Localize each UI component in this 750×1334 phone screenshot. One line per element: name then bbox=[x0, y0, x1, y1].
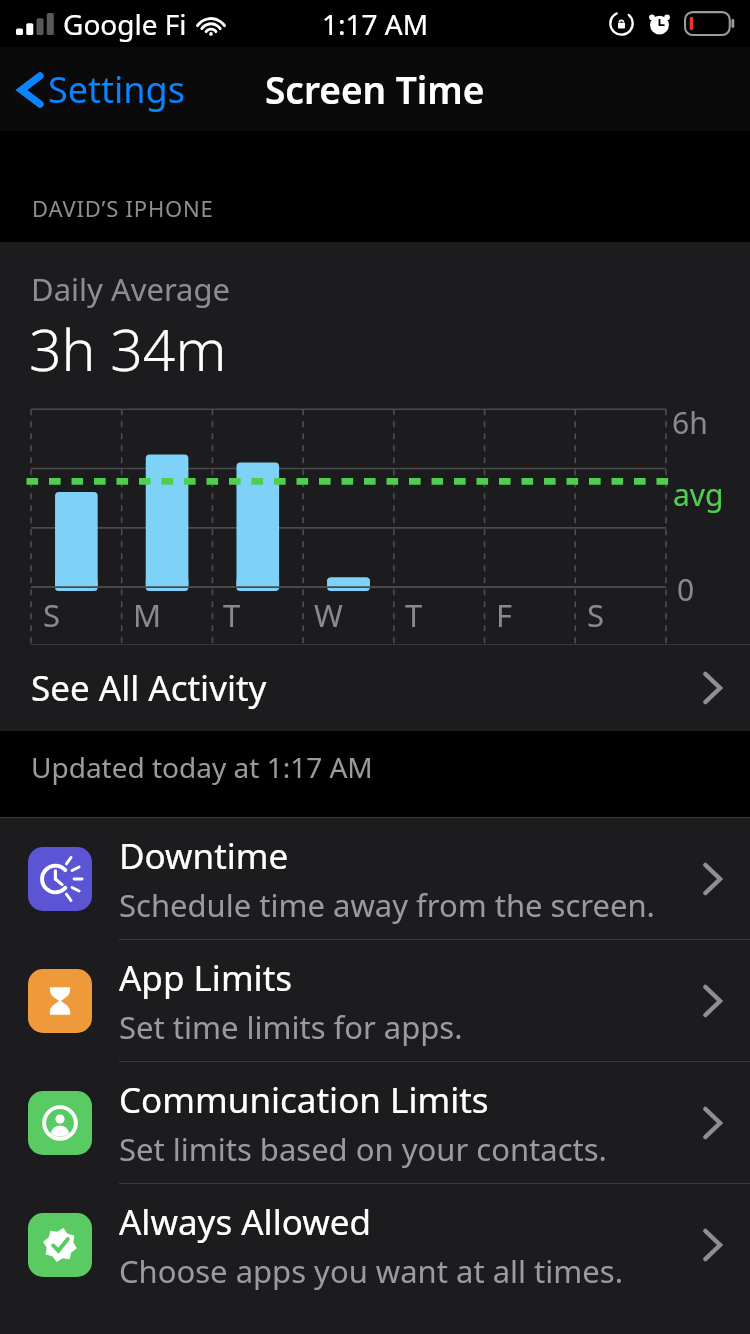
staticText: 1:17 AM bbox=[322, 5, 429, 43]
other: Communication Limits bbox=[37, 1100, 83, 1146]
staticText: Communication Limits bbox=[119, 1076, 489, 1124]
staticText: 6h bbox=[672, 402, 708, 443]
staticText: F bbox=[496, 594, 513, 636]
staticText: Screen Time bbox=[265, 64, 485, 114]
staticText: See All Activity bbox=[31, 664, 702, 712]
staticText: Choose apps you want at all times. bbox=[119, 1250, 623, 1292]
staticText: S bbox=[587, 594, 605, 636]
button[interactable]: Settings bbox=[12, 59, 191, 120]
staticText: S bbox=[43, 594, 61, 636]
staticText: M bbox=[133, 594, 162, 636]
button[interactable]: Communication Limits bbox=[0, 1062, 750, 1183]
staticText: W bbox=[314, 594, 343, 636]
other: Rotation Lock bbox=[608, 10, 635, 37]
button[interactable]: App Limits bbox=[0, 940, 750, 1061]
staticText: T bbox=[223, 594, 241, 636]
staticText: Set time limits for apps. bbox=[119, 1006, 463, 1048]
staticText: Schedule time away from the screen. bbox=[119, 884, 655, 926]
button[interactable]: Always Allowed bbox=[0, 1184, 750, 1305]
other: Alarm bbox=[646, 10, 673, 37]
staticText: DAVID’S IPHONE bbox=[32, 193, 214, 223]
button[interactable]: Downtime bbox=[0, 818, 750, 939]
button[interactable]: See All Activity bbox=[0, 645, 750, 731]
staticText: Set limits based on your contacts. bbox=[119, 1128, 607, 1170]
staticText: T bbox=[405, 594, 423, 636]
other: Always Allowed bbox=[37, 1222, 83, 1268]
other: App Limits bbox=[37, 978, 83, 1024]
staticText: Updated today at 1:17 AM bbox=[31, 748, 373, 786]
staticText: Google Fi bbox=[63, 5, 187, 43]
staticText: 3h 34m bbox=[29, 310, 227, 388]
staticText: Always Allowed bbox=[119, 1198, 371, 1246]
staticText: avg bbox=[673, 474, 724, 515]
other: Battery bbox=[684, 11, 736, 36]
staticText: 0 bbox=[677, 569, 695, 610]
staticText: Daily Average bbox=[31, 268, 231, 310]
staticText: Settings bbox=[48, 65, 185, 114]
staticText: App Limits bbox=[119, 954, 293, 1002]
other: Downtime bbox=[37, 856, 83, 902]
staticText: Downtime bbox=[119, 832, 289, 880]
